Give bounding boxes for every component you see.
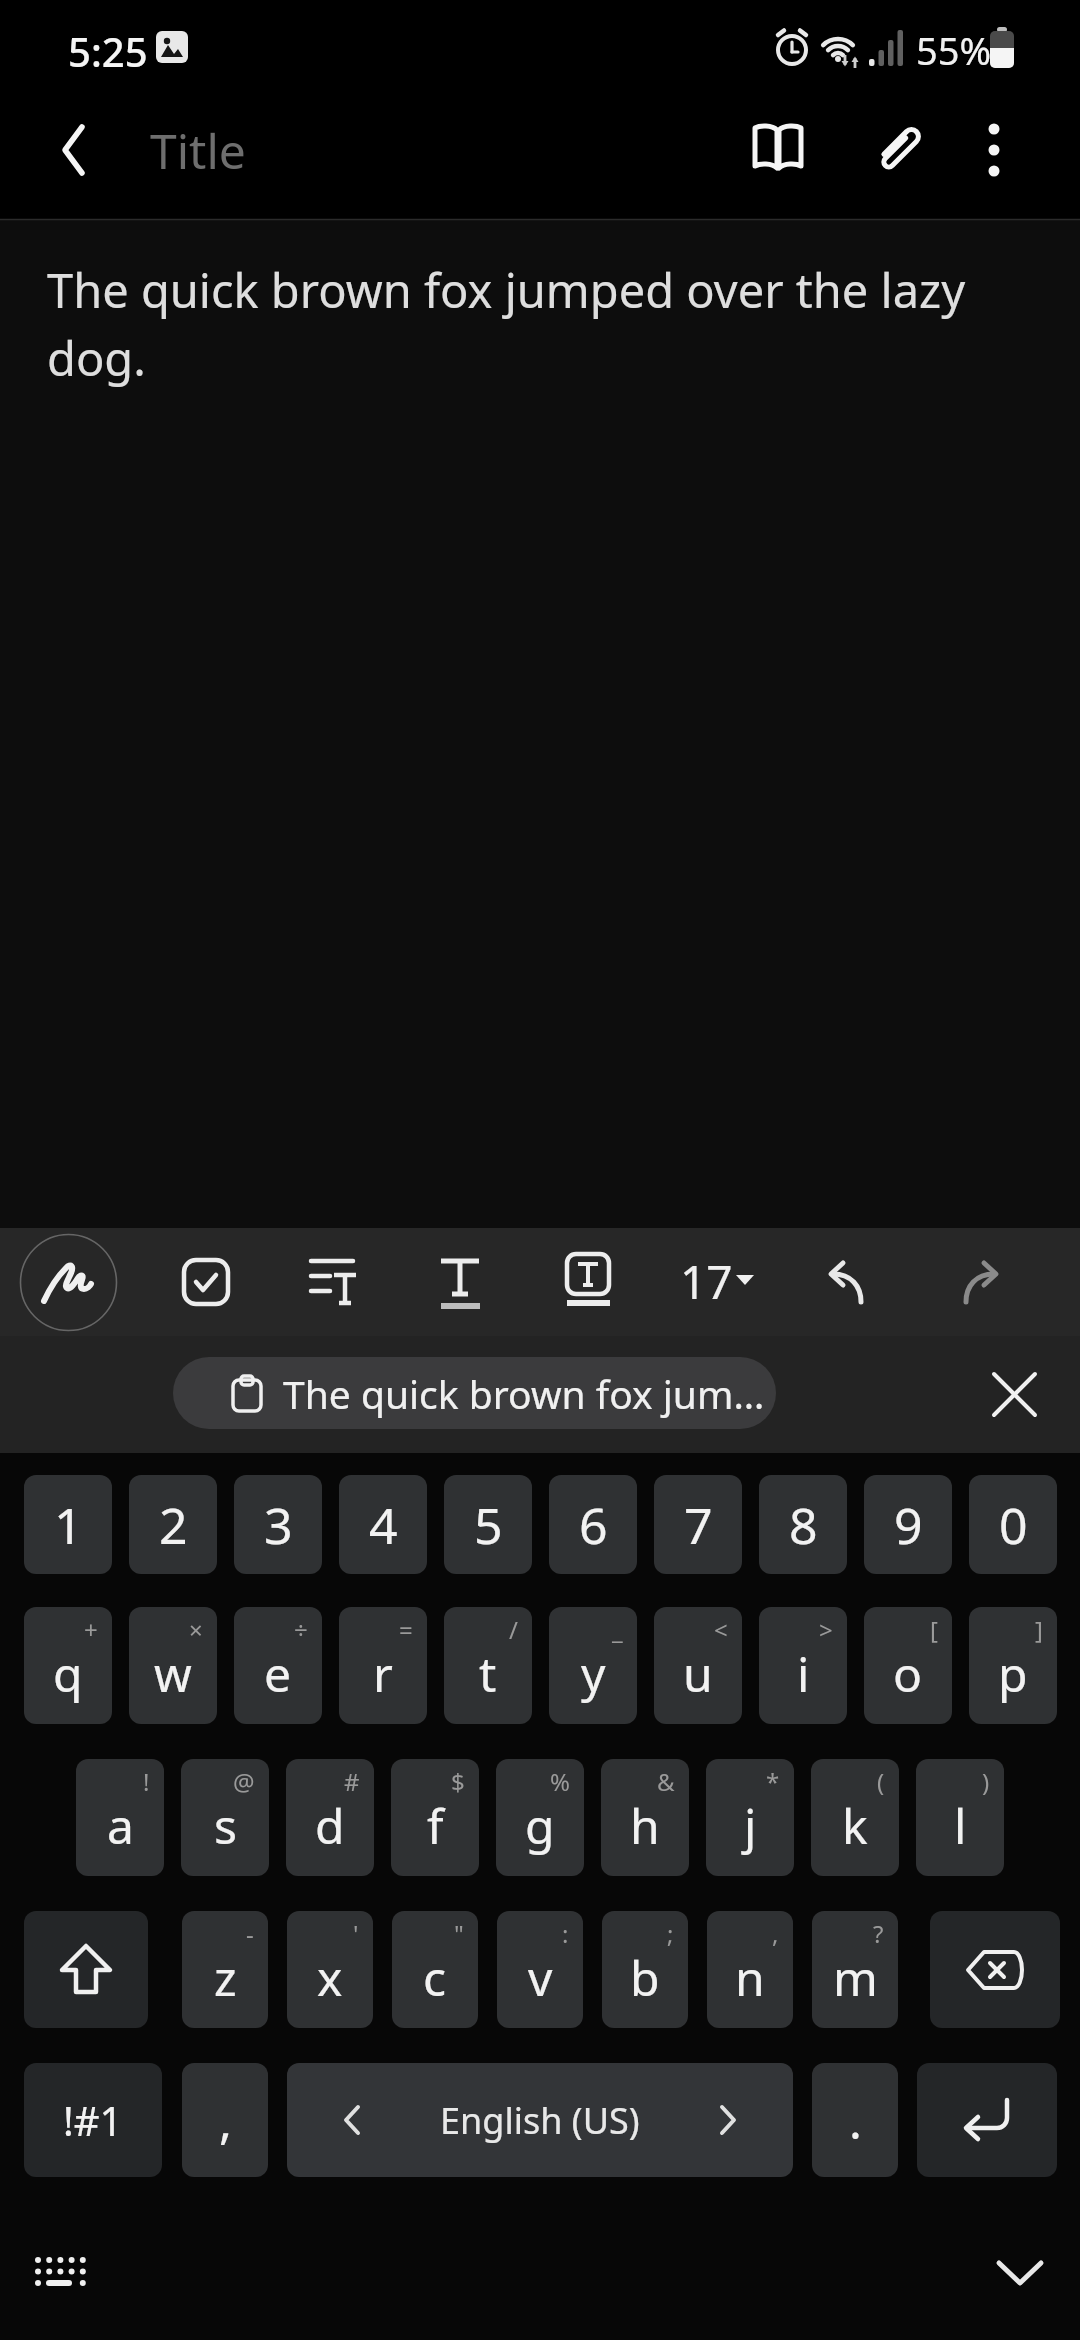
staticText: English (US) xyxy=(440,2096,640,2145)
button[interactable]: n xyxy=(707,1911,793,2028)
staticText: q xyxy=(53,1641,83,1706)
button[interactable]: l xyxy=(916,1759,1004,1876)
button[interactable]: 1 xyxy=(24,1475,112,1574)
staticText: 3 xyxy=(264,1491,293,1559)
staticText: The quick brown fox jumped over the lazy… xyxy=(47,258,1047,389)
staticText: d xyxy=(315,1793,345,1858)
button[interactable]: v xyxy=(497,1911,583,2028)
staticText: h xyxy=(630,1793,660,1858)
staticText: + xyxy=(84,1613,98,1646)
button[interactable]: 4 xyxy=(339,1475,427,1574)
button[interactable]: i xyxy=(759,1607,847,1724)
button[interactable]: z xyxy=(182,1911,268,2028)
button[interactable]: x xyxy=(287,1911,373,2028)
button[interactable]: j xyxy=(706,1759,794,1876)
button[interactable]: q xyxy=(24,1607,112,1724)
button[interactable]: o xyxy=(864,1607,952,1724)
button[interactable] xyxy=(817,1250,881,1314)
button[interactable]: 17 xyxy=(672,1242,768,1322)
staticText: - xyxy=(246,1917,254,1950)
button[interactable] xyxy=(19,1233,118,1332)
button[interactable]: f xyxy=(391,1759,479,1876)
staticText: c xyxy=(423,1945,447,2010)
button[interactable]: a xyxy=(76,1759,164,1876)
staticText: o xyxy=(893,1641,923,1706)
button[interactable] xyxy=(18,2239,102,2309)
button[interactable]: k xyxy=(811,1759,899,1876)
button[interactable]: , xyxy=(182,2063,268,2177)
staticText: !#1 xyxy=(63,2093,123,2147)
staticText: The quick brown fox jum… xyxy=(283,1367,765,1420)
staticText: s xyxy=(214,1793,237,1858)
button[interactable]: 5 xyxy=(444,1475,532,1574)
button[interactable] xyxy=(174,1250,238,1314)
staticText: u xyxy=(683,1641,713,1706)
staticText: ) xyxy=(982,1765,990,1798)
button[interactable]: m xyxy=(812,1911,898,2028)
staticText: ] xyxy=(1035,1613,1043,1646)
staticText: , xyxy=(219,2088,232,2153)
button[interactable]: p xyxy=(969,1607,1057,1724)
button[interactable]: h xyxy=(601,1759,689,1876)
staticText: . xyxy=(849,2088,862,2153)
staticText: t xyxy=(479,1641,497,1706)
button[interactable] xyxy=(993,1373,1057,1437)
button[interactable]: b xyxy=(602,1911,688,2028)
button[interactable]: s xyxy=(181,1759,269,1876)
button[interactable]: w xyxy=(129,1607,217,1724)
staticText: * xyxy=(766,1765,780,1798)
staticText: l xyxy=(954,1793,967,1858)
button[interactable] xyxy=(962,116,1026,184)
button[interactable] xyxy=(975,2233,1065,2313)
button[interactable]: 9 xyxy=(864,1475,952,1574)
staticText: b xyxy=(630,1945,660,2010)
staticText: 5:25 xyxy=(68,24,148,78)
button[interactable]: r xyxy=(339,1607,427,1724)
button[interactable]: 3 xyxy=(234,1475,322,1574)
button[interactable] xyxy=(744,116,812,184)
button[interactable]: u xyxy=(654,1607,742,1724)
button[interactable] xyxy=(930,1911,1060,2028)
button[interactable] xyxy=(556,1250,620,1314)
button[interactable]: 8 xyxy=(759,1475,847,1574)
button[interactable]: English (US) xyxy=(287,2063,793,2177)
button[interactable] xyxy=(24,1911,148,2028)
button[interactable]: 6 xyxy=(549,1475,637,1574)
staticText: / xyxy=(509,1613,518,1646)
staticText: _ xyxy=(612,1613,623,1646)
button[interactable]: t xyxy=(444,1607,532,1724)
button[interactable]: g xyxy=(496,1759,584,1876)
button[interactable]: 7 xyxy=(654,1475,742,1574)
staticText: a xyxy=(107,1793,134,1858)
button[interactable] xyxy=(917,2063,1057,2177)
staticText: " xyxy=(454,1917,464,1950)
staticText: 5 xyxy=(474,1491,503,1559)
button[interactable]: d xyxy=(286,1759,374,1876)
staticText: , xyxy=(772,1917,779,1950)
button[interactable] xyxy=(301,1250,365,1314)
staticText: 17 xyxy=(680,1250,733,1313)
staticText: $ xyxy=(451,1765,465,1798)
button[interactable] xyxy=(946,1250,1010,1314)
staticText: n xyxy=(735,1945,765,2010)
staticText: [ xyxy=(930,1613,938,1646)
staticText: i xyxy=(797,1641,810,1706)
staticText: 0 xyxy=(999,1491,1028,1559)
button[interactable]: e xyxy=(234,1607,322,1724)
staticText: < xyxy=(714,1613,728,1646)
button[interactable]: The quick brown fox jum… xyxy=(173,1357,776,1429)
button[interactable]: y xyxy=(549,1607,637,1724)
button[interactable] xyxy=(428,1250,492,1314)
staticText: y xyxy=(581,1641,606,1706)
staticText: 6 xyxy=(579,1491,608,1559)
button[interactable]: 0 xyxy=(969,1475,1057,1574)
button[interactable] xyxy=(42,118,106,182)
button[interactable]: 2 xyxy=(129,1475,217,1574)
button[interactable]: . xyxy=(812,2063,898,2177)
button[interactable]: c xyxy=(392,1911,478,2028)
staticText: k xyxy=(842,1793,868,1858)
staticText: g xyxy=(525,1793,555,1858)
staticText: m xyxy=(833,1945,878,2010)
button[interactable] xyxy=(864,116,932,184)
button[interactable]: !#1 xyxy=(24,2063,162,2177)
